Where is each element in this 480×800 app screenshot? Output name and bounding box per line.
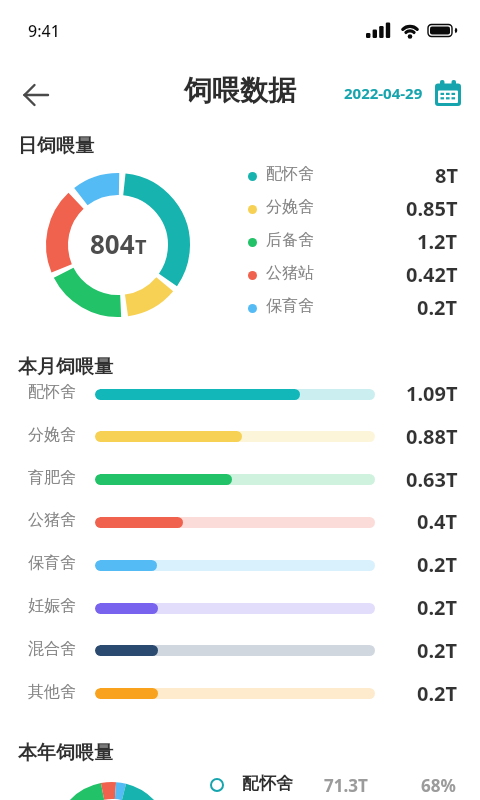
staticText: 0.2T <box>417 294 458 321</box>
button[interactable] <box>18 78 54 112</box>
staticText: 1.09T <box>406 380 458 407</box>
staticText: 混合舍 <box>28 639 76 659</box>
staticText: 0.85T <box>406 195 458 222</box>
staticText: 1.2T <box>417 228 458 255</box>
staticText: 妊娠舍 <box>28 596 76 616</box>
staticText: 后备舍 <box>266 230 314 250</box>
staticText: 分娩舍 <box>266 197 314 217</box>
staticText: 配怀舍 <box>242 773 293 794</box>
staticText: 71.3T <box>324 774 368 797</box>
staticText: 804 <box>90 226 135 261</box>
staticText: 本年饲喂量 <box>18 741 113 765</box>
staticText: 公猪舍 <box>28 510 76 530</box>
staticText: 日饲喂量 <box>18 134 94 158</box>
staticText: T <box>135 233 147 260</box>
staticText: 0.2T <box>417 594 458 621</box>
staticText: 8T <box>435 162 458 189</box>
button[interactable]: 2022-04-29 <box>344 80 461 106</box>
staticText: 分娩舍 <box>28 425 76 445</box>
staticText: 2022-04-29 <box>344 83 423 103</box>
staticText: 0.2T <box>417 551 458 578</box>
staticText: 保育舍 <box>28 553 76 573</box>
staticText: 0.42T <box>406 261 458 288</box>
staticText: 公猪站 <box>266 263 314 283</box>
staticText: 其他舍 <box>28 682 76 702</box>
staticText: 0.2T <box>417 637 458 664</box>
staticText: 0.4T <box>417 508 458 535</box>
staticText: 0.88T <box>406 423 458 450</box>
staticText: 饲喂数据 <box>184 73 296 108</box>
staticText: 配怀舍 <box>28 382 76 402</box>
staticText: 0.2T <box>417 680 458 707</box>
staticText: 育肥舍 <box>28 468 76 488</box>
staticText: 0.63T <box>406 466 458 493</box>
staticText: 保育舍 <box>266 296 314 316</box>
staticText: 9:41 <box>28 20 60 42</box>
staticText: 68% <box>421 774 456 797</box>
staticText: 配怀舍 <box>266 164 314 184</box>
staticText: 本月饲喂量 <box>18 355 113 379</box>
